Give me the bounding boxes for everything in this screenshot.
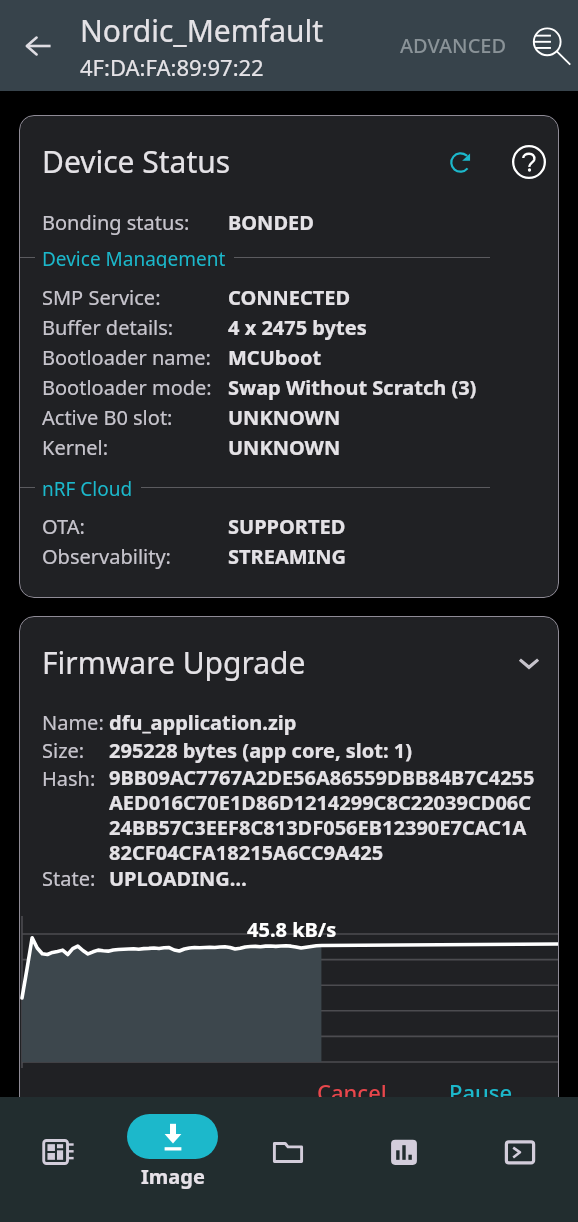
- staticText: ADVANCED: [400, 32, 507, 59]
- staticText: nRF Cloud: [42, 476, 133, 498]
- staticText: Image: [141, 1163, 205, 1190]
- staticText: Swap Without Scratch (3): [228, 374, 477, 401]
- button[interactable]: Cancel: [301, 1068, 403, 1116]
- staticText: 24BB57C3EEF8C813DF056EB12390E7CAC1A: [109, 814, 527, 839]
- staticText: Cancel: [317, 1077, 387, 1107]
- staticText: State:: [42, 865, 96, 892]
- button[interactable]: Image: [115, 1097, 230, 1222]
- staticText: STREAMING: [228, 543, 347, 570]
- staticText: Firmware Upgrade: [42, 642, 498, 683]
- staticText: Buffer details:: [42, 314, 174, 341]
- staticText: CONNECTED: [228, 284, 351, 311]
- staticText: Name:: [42, 709, 104, 736]
- staticText: Pause: [449, 1077, 513, 1107]
- staticText: AED016C70E1D86D1214299C8C22039CD06C: [109, 789, 532, 814]
- staticText: MCUboot: [228, 344, 322, 371]
- staticText: SMP Service:: [42, 284, 161, 311]
- button[interactable]: Search log: [526, 23, 570, 67]
- staticText: 4F:DA:FA:89:97:22: [80, 52, 264, 82]
- button[interactable]: Help: [509, 142, 549, 182]
- staticText: 82CF04CFA18215A6CC9A425: [109, 839, 384, 864]
- button[interactable]: ADVANCED: [390, 20, 517, 71]
- staticText: 4 x 2475 bytes: [228, 314, 367, 341]
- button[interactable]: Device: [0, 1097, 115, 1222]
- staticText: Observability:: [42, 543, 171, 570]
- staticText: BONDED: [228, 209, 314, 236]
- staticText: 295228 bytes (app core, slot: 1): [109, 737, 413, 764]
- staticText: Device Management: [42, 246, 226, 268]
- button[interactable]: Statistics: [346, 1097, 462, 1222]
- staticText: Bootloader mode:: [42, 374, 212, 401]
- staticText: Device Status: [42, 141, 231, 182]
- staticText: Bonding status:: [42, 209, 190, 236]
- button[interactable]: Pause: [433, 1068, 529, 1116]
- staticText: UPLOADING…: [109, 865, 247, 892]
- staticText: dfu_application.zip: [109, 709, 297, 736]
- staticText: Hash:: [42, 765, 96, 792]
- button[interactable]: Back: [14, 22, 62, 70]
- staticText: OTA:: [42, 513, 85, 540]
- staticText: Bootloader name:: [42, 344, 211, 371]
- button[interactable]: Console: [462, 1097, 578, 1222]
- staticText: UNKNOWN: [228, 404, 341, 431]
- button[interactable]: Collapse: [510, 644, 548, 682]
- staticText: 45.8 kB/s: [247, 916, 337, 943]
- staticText: 9BB09AC7767A2DE56A86559DBB84B7C4255: [109, 764, 535, 789]
- button[interactable]: Refresh: [440, 142, 480, 182]
- staticText: Kernel:: [42, 434, 109, 461]
- staticText: Size:: [42, 737, 85, 764]
- staticText: Active B0 slot:: [42, 404, 173, 431]
- button[interactable]: Files: [230, 1097, 346, 1222]
- staticText: UNKNOWN: [228, 434, 341, 461]
- staticText: Nordic_Memfault: [80, 10, 324, 51]
- staticText: SUPPORTED: [228, 513, 346, 540]
